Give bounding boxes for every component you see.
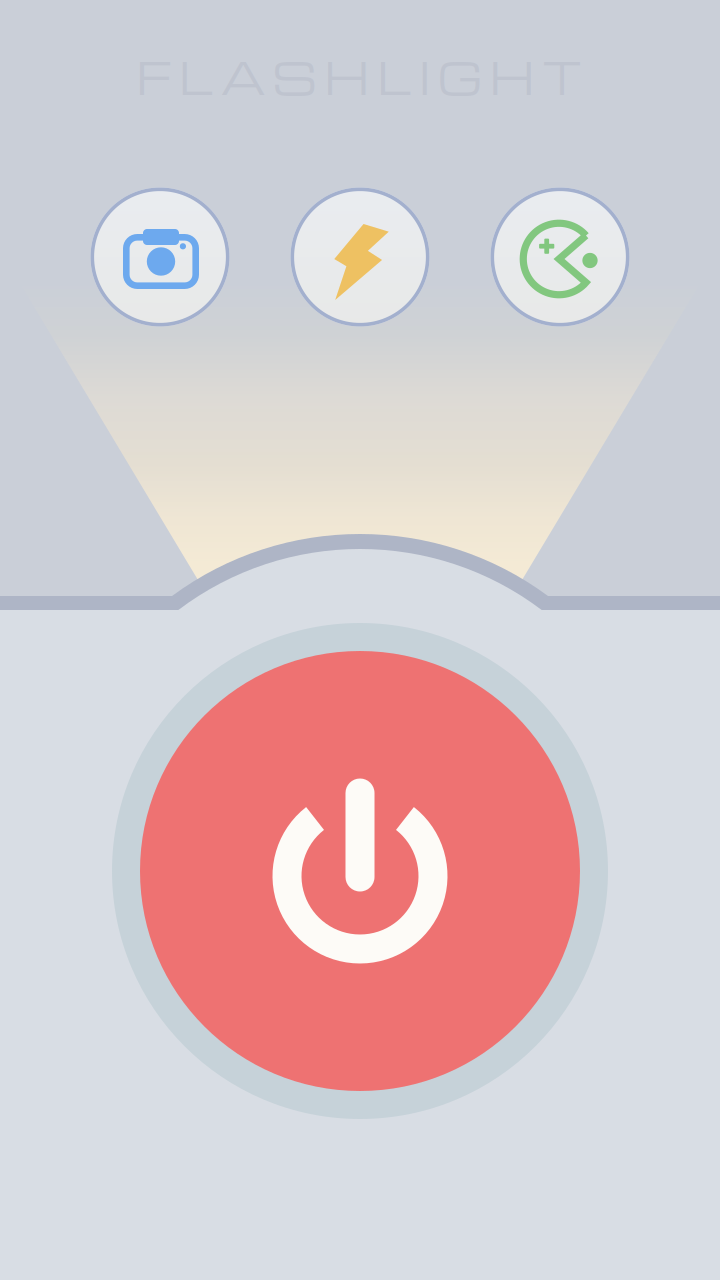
staticText: FLASHLIGHT — [136, 46, 582, 106]
button[interactable]: Power — [112, 623, 608, 1119]
button[interactable]: Camera — [60, 187, 260, 326]
button[interactable]: Flashlight — [260, 187, 460, 326]
button[interactable]: Strobe — [460, 187, 660, 326]
